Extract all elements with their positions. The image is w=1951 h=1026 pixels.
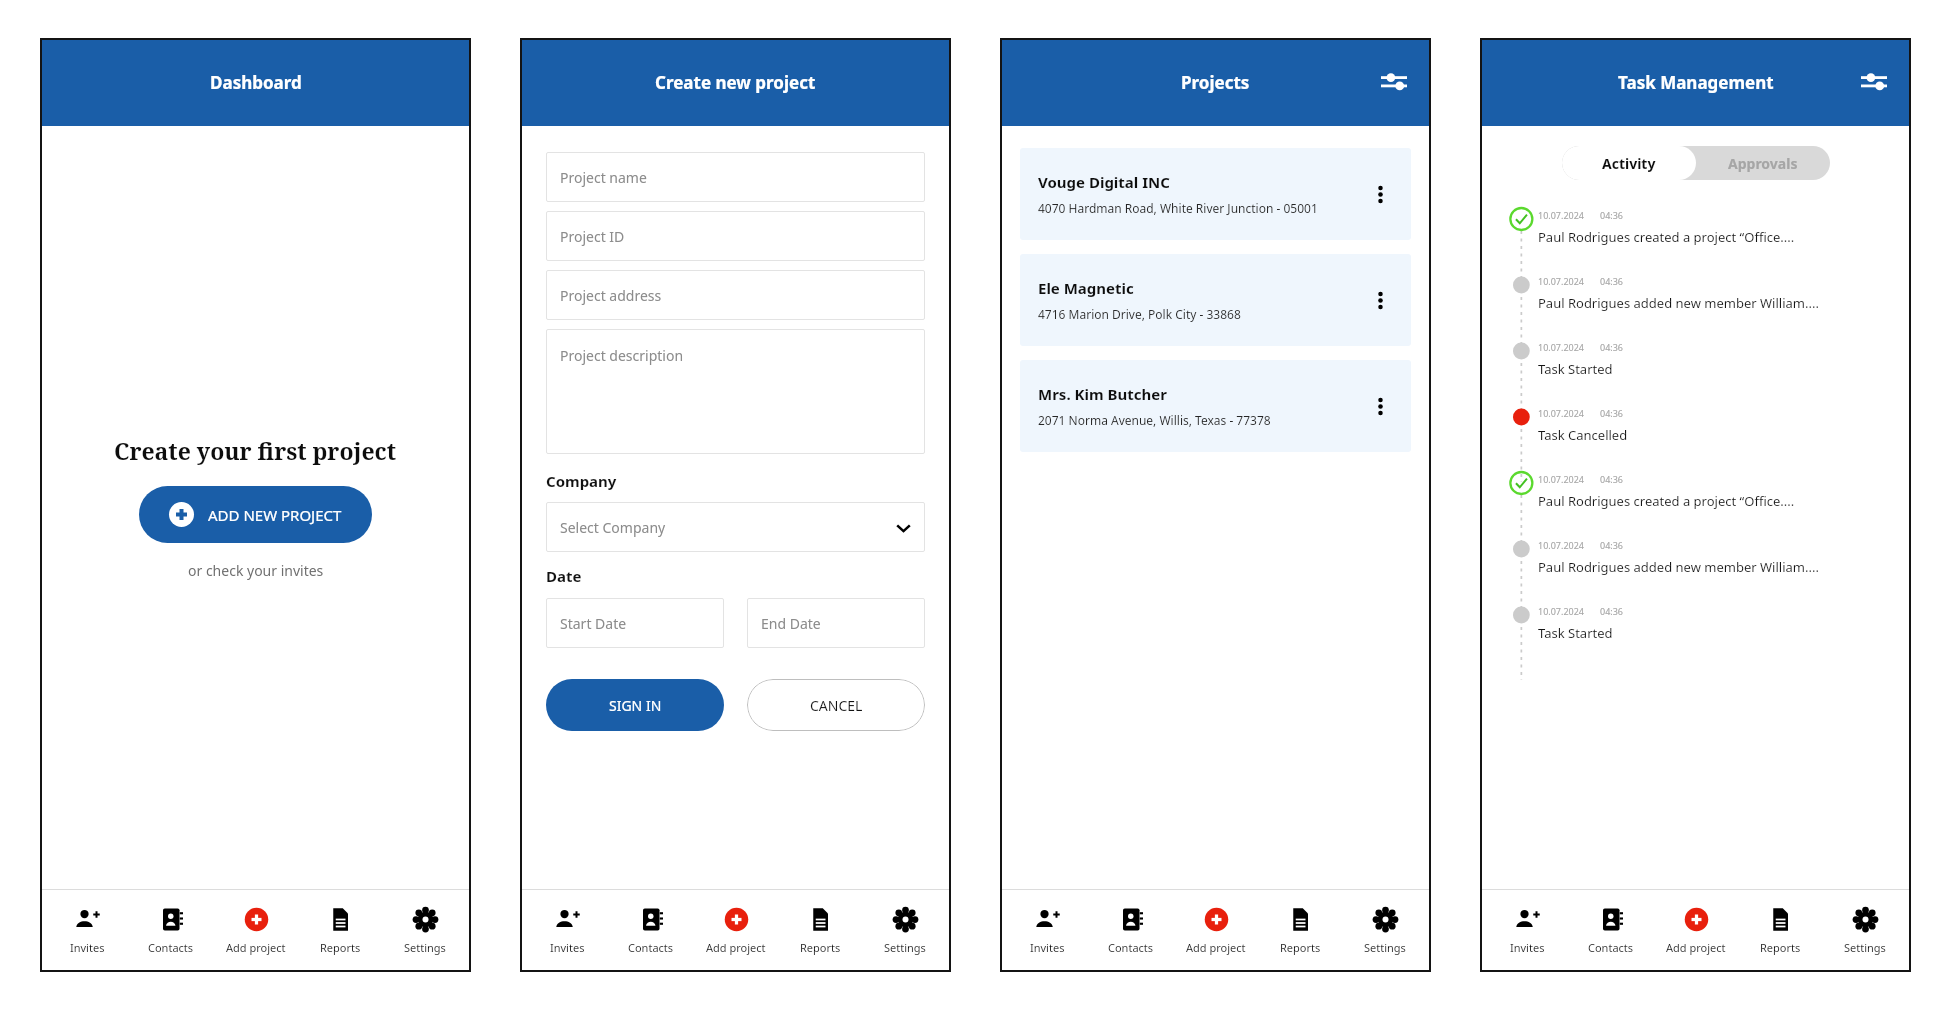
staticText: Reports (320, 940, 361, 955)
staticText: 04:36 (1600, 407, 1624, 419)
staticText: Select Company (560, 518, 666, 537)
button[interactable]: SIGN IN (546, 679, 724, 731)
staticText: 4716 Marion Drive, Polk City - 33868 (1038, 306, 1241, 322)
button[interactable]: Invites (1009, 904, 1085, 958)
staticText: 10.07.2024 (1538, 209, 1585, 221)
button[interactable]: Add project (1178, 904, 1254, 958)
button[interactable]: Start Date (546, 598, 724, 648)
staticText: Settings (404, 940, 446, 955)
staticText: Mrs. Kim Butcher (1038, 384, 1167, 404)
staticText: Approvals (1728, 154, 1798, 173)
button[interactable]: More options (1363, 283, 1397, 317)
staticText: 10.07.2024 (1538, 407, 1585, 419)
button[interactable]: Select Company (546, 502, 925, 552)
button[interactable]: Invites (529, 904, 605, 958)
button[interactable]: Filter (1373, 61, 1415, 103)
staticText: Task Started (1538, 624, 1613, 642)
staticText: Paul Rodrigues created a project “Office… (1538, 492, 1795, 510)
button[interactable]: Invites (49, 904, 125, 958)
staticText: Ele Magnetic (1038, 278, 1134, 298)
button[interactable]: Reports (1262, 904, 1338, 958)
button[interactable]: Ele Magnetic (1020, 254, 1411, 346)
button[interactable]: Vouge Digital INC (1020, 148, 1411, 240)
staticText: Add project (706, 940, 766, 955)
staticText: Paul Rodrigues added new member William.… (1538, 558, 1819, 576)
staticText: Contacts (628, 940, 674, 955)
button[interactable]: Settings (1347, 904, 1423, 958)
staticText: Paul Rodrigues created a project “Office… (1538, 228, 1795, 246)
staticText: Create new project (655, 71, 816, 94)
button[interactable]: Reports (1742, 904, 1818, 958)
staticText: ADD NEW PROJECT (208, 505, 342, 525)
staticText: Project ID (560, 227, 625, 246)
button[interactable]: Settings (867, 904, 943, 958)
staticText: 4070 Hardman Road, White River Junction … (1038, 200, 1318, 216)
staticText: Settings (884, 940, 926, 955)
button[interactable]: Contacts (133, 904, 209, 958)
staticText: Invites (70, 940, 105, 955)
button[interactable]: Project address (546, 270, 925, 320)
button[interactable]: Add project (1658, 904, 1734, 958)
staticText: 04:36 (1600, 605, 1624, 617)
button[interactable]: Filter (1853, 61, 1895, 103)
staticText: Company (546, 471, 617, 491)
button[interactable]: ADD NEW PROJECT (139, 486, 372, 543)
staticText: 10.07.2024 (1538, 473, 1585, 485)
button[interactable]: or check your invites (188, 561, 324, 580)
button[interactable]: Reports (302, 904, 378, 958)
staticText: Add project (1186, 940, 1246, 955)
button[interactable]: Project name (546, 152, 925, 202)
staticText: Add project (1666, 940, 1726, 955)
staticText: 10.07.2024 (1538, 275, 1585, 287)
staticText: Task Started (1538, 360, 1613, 378)
button[interactable]: Activity (1562, 146, 1696, 180)
staticText: 04:36 (1600, 275, 1624, 287)
staticText: 2071 Norma Avenue, Willis, Texas - 77378 (1038, 412, 1271, 428)
staticText: 10.07.2024 (1538, 539, 1585, 551)
staticText: Contacts (148, 940, 194, 955)
button[interactable]: Project description (546, 329, 925, 454)
staticText: Reports (1280, 940, 1321, 955)
staticText: Contacts (1108, 940, 1154, 955)
button[interactable]: Project ID (546, 211, 925, 261)
staticText: 10.07.2024 (1538, 605, 1585, 617)
button[interactable]: Settings (1827, 904, 1903, 958)
button[interactable]: More options (1363, 177, 1397, 211)
button[interactable]: Mrs. Kim Butcher (1020, 360, 1411, 452)
staticText: Start Date (560, 614, 627, 633)
staticText: 04:36 (1600, 473, 1624, 485)
staticText: Contacts (1588, 940, 1634, 955)
staticText: Invites (1030, 940, 1065, 955)
button[interactable]: Contacts (1093, 904, 1169, 958)
staticText: Invites (1510, 940, 1545, 955)
button[interactable]: Contacts (613, 904, 689, 958)
staticText: Project address (560, 286, 662, 305)
button[interactable]: Contacts (1573, 904, 1649, 958)
staticText: Task Cancelled (1538, 426, 1628, 444)
staticText: 04:36 (1600, 539, 1624, 551)
button[interactable]: Reports (782, 904, 858, 958)
button[interactable]: Add project (218, 904, 294, 958)
button[interactable]: Add project (698, 904, 774, 958)
staticText: CANCEL (810, 696, 863, 715)
staticText: Invites (550, 940, 585, 955)
staticText: Date (546, 566, 582, 586)
staticText: Reports (1760, 940, 1801, 955)
button[interactable]: CANCEL (747, 679, 925, 731)
staticText: Create your first project (114, 435, 397, 466)
staticText: 04:36 (1600, 341, 1624, 353)
staticText: Activity (1602, 154, 1656, 173)
staticText: Settings (1364, 940, 1406, 955)
button[interactable]: Approvals (1696, 146, 1830, 180)
button[interactable]: Settings (387, 904, 463, 958)
button[interactable]: End Date (747, 598, 925, 648)
staticText: Task Management (1618, 71, 1774, 94)
staticText: Project name (560, 168, 647, 187)
staticText: Settings (1844, 940, 1886, 955)
staticText: 04:36 (1600, 209, 1624, 221)
staticText: 10.07.2024 (1538, 341, 1585, 353)
button[interactable]: Invites (1489, 904, 1565, 958)
staticText: Vouge Digital INC (1038, 172, 1170, 192)
button[interactable]: More options (1363, 389, 1397, 423)
staticText: Dashboard (210, 71, 302, 94)
